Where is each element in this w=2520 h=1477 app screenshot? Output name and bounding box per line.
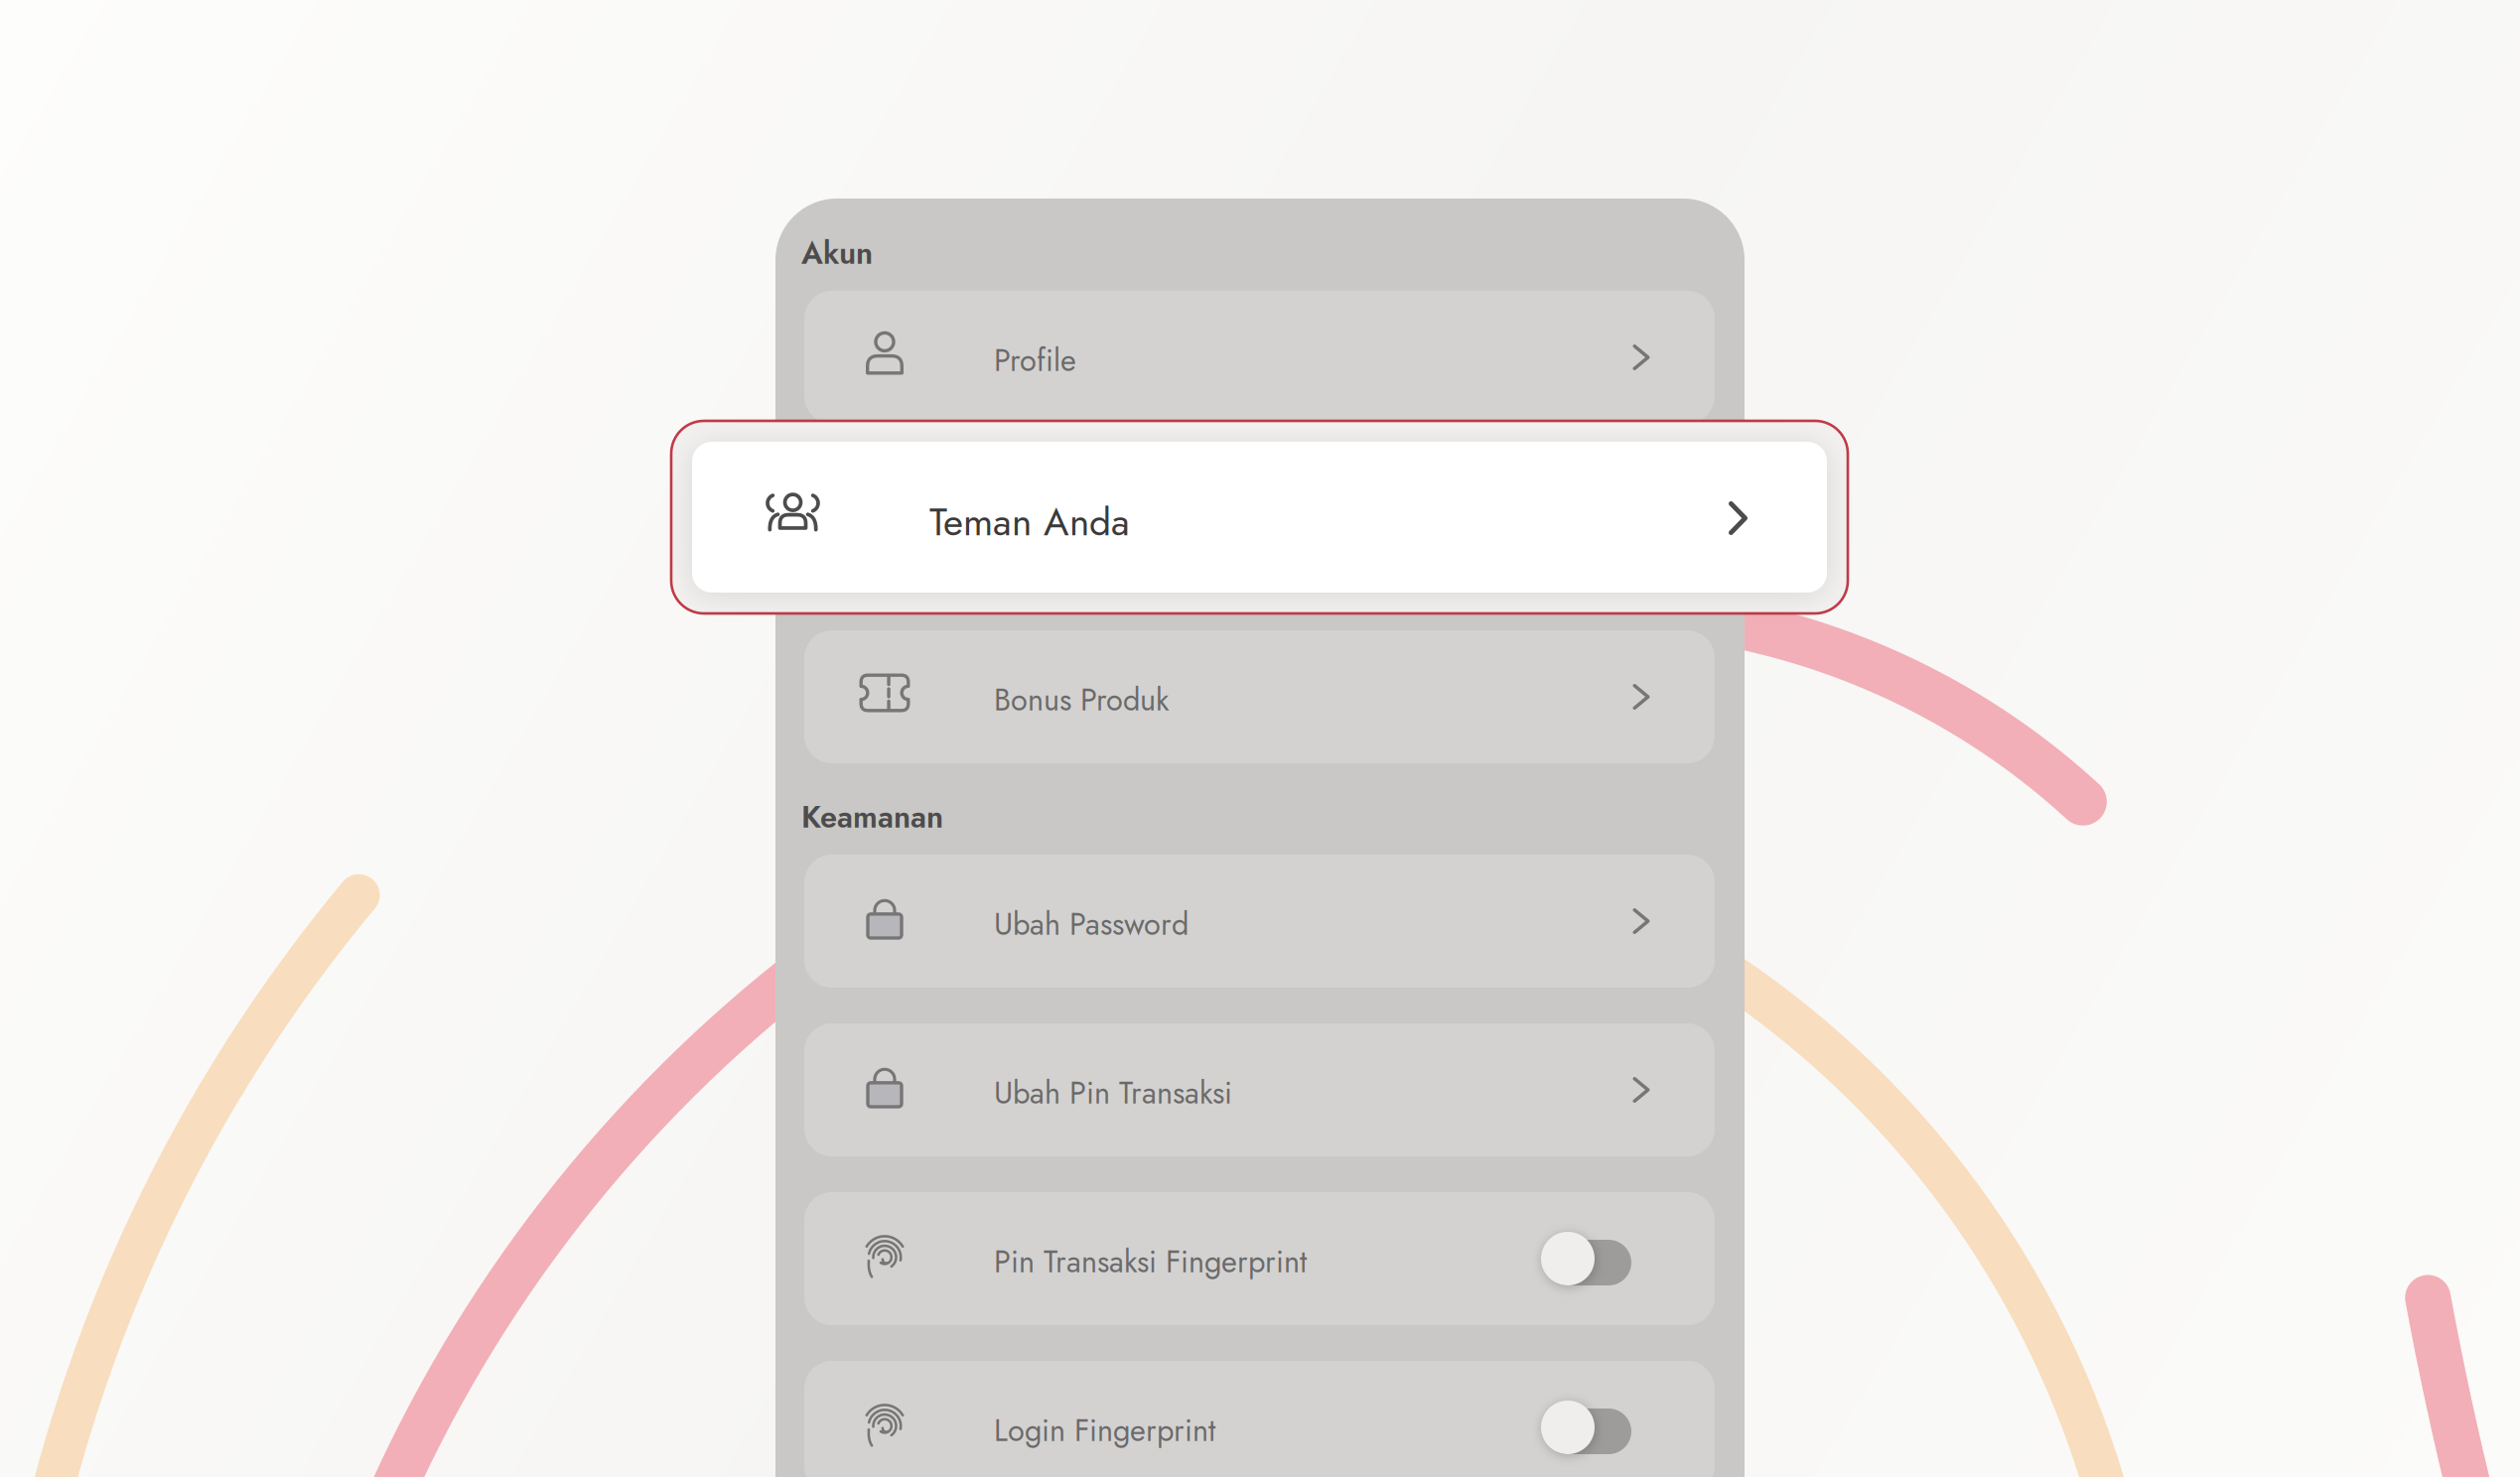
button[interactable]: Teman Anda bbox=[671, 421, 1848, 613]
staticText: Keamanan bbox=[801, 795, 943, 839]
staticText: Bonus Produk bbox=[994, 678, 1169, 722]
staticText: Ubah Password bbox=[994, 902, 1189, 946]
staticText: Login Fingerprint bbox=[994, 1409, 1215, 1452]
staticText: Akun bbox=[801, 231, 873, 275]
staticText: Pin Transaksi Fingerprint bbox=[994, 1240, 1307, 1284]
staticText: Profile bbox=[994, 338, 1076, 382]
button[interactable]: Profile bbox=[804, 291, 1715, 424]
button[interactable]: Ubah Pin Transaksi bbox=[804, 1023, 1715, 1156]
staticText: Teman Anda bbox=[929, 494, 1130, 550]
button[interactable]: Login Fingerprint bbox=[804, 1361, 1715, 1477]
button[interactable]: Ubah Password bbox=[804, 855, 1715, 988]
staticText: Ubah Pin Transaksi bbox=[994, 1071, 1232, 1115]
button[interactable]: Pin Transaksi Fingerprint bbox=[804, 1192, 1715, 1325]
button[interactable]: Bonus Produk bbox=[804, 630, 1715, 763]
